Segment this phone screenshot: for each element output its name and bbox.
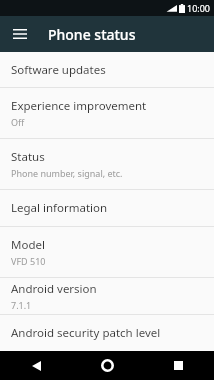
staticText: 7.1.1 (11, 299, 32, 311)
button[interactable]: Software updates (0, 52, 214, 87)
staticText: 10:00 (187, 2, 211, 14)
staticText: Android security patch level (11, 325, 161, 341)
button[interactable]: Experience improvement (0, 88, 214, 138)
staticText: VFD 510 (11, 255, 46, 267)
button[interactable]: Android security patch level (0, 315, 214, 351)
button[interactable]: Home (72, 351, 143, 380)
button[interactable]: Open navigation menu (6, 20, 34, 48)
button[interactable]: Legal information (0, 190, 214, 226)
staticText: Phone status (48, 25, 136, 44)
button[interactable]: Model (0, 227, 214, 277)
staticText: Software updates (11, 62, 106, 78)
staticText: Status (11, 149, 45, 165)
button[interactable]: Status (0, 139, 214, 189)
button[interactable]: Android version (0, 278, 214, 314)
staticText: Experience improvement (11, 98, 147, 114)
staticText: Off (11, 116, 25, 128)
staticText: Legal information (11, 200, 108, 216)
staticText: Phone number, signal, etc. (11, 167, 123, 179)
button[interactable]: Recent apps (143, 351, 214, 380)
staticText: Model (11, 237, 45, 253)
staticText: Android version (11, 281, 97, 297)
button[interactable]: Back (0, 351, 72, 380)
